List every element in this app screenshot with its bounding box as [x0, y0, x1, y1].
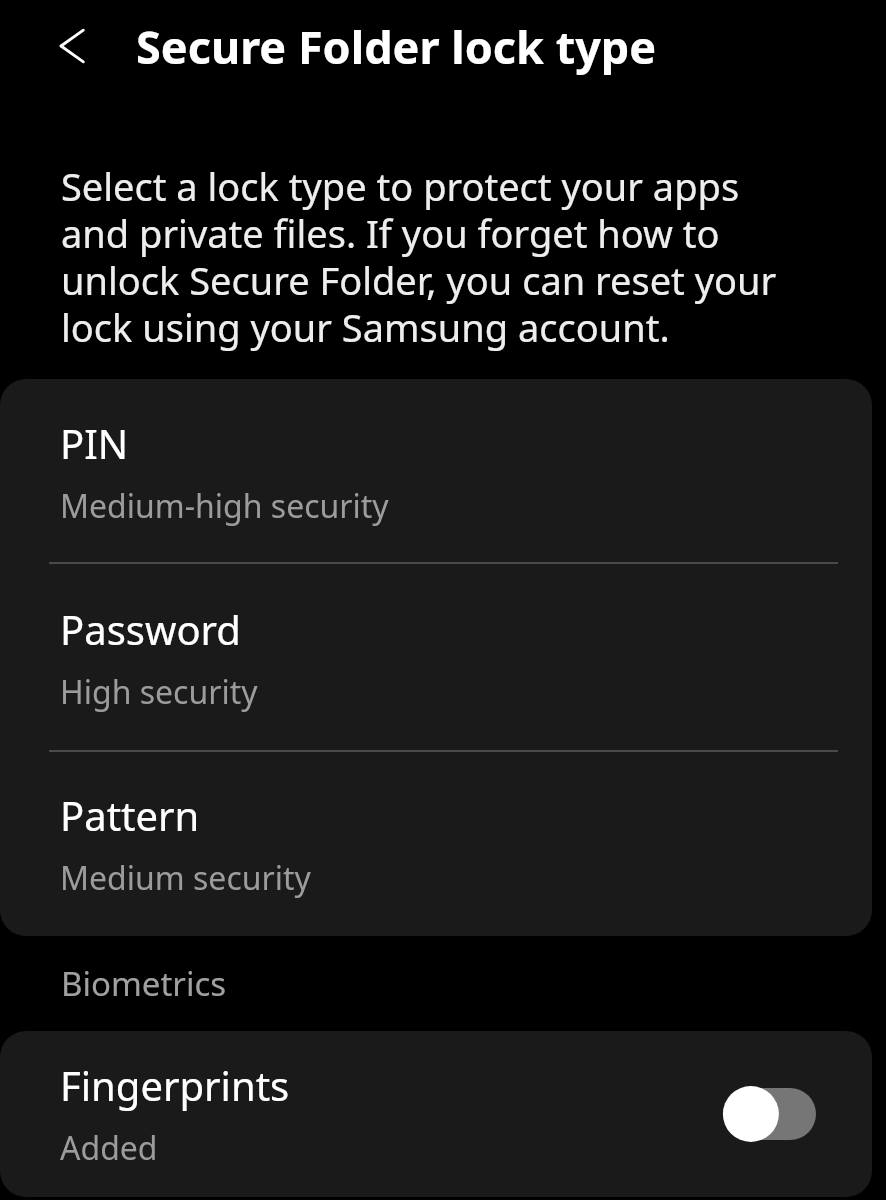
staticText: Added	[60, 1126, 158, 1170]
staticText: PIN	[60, 416, 129, 470]
staticText: Select a lock type to protect your apps …	[61, 160, 816, 353]
staticText: Medium-high security	[60, 484, 389, 528]
button[interactable]: Fingerprints toggle, off	[718, 1083, 822, 1145]
button[interactable]: Pattern	[0, 752, 872, 936]
staticText: Pattern	[60, 788, 200, 842]
staticText: Fingerprints	[60, 1058, 290, 1112]
staticText: High security	[60, 670, 258, 714]
staticText: Password	[60, 602, 241, 656]
staticText: Secure Folder lock type	[136, 16, 657, 77]
staticText: Medium security	[60, 856, 311, 900]
button[interactable]: Navigate up	[30, 8, 106, 84]
button[interactable]: PIN	[0, 379, 872, 564]
staticText: Biometrics	[61, 961, 227, 1006]
button[interactable]: Password	[0, 564, 872, 752]
button[interactable]: Fingerprints	[0, 1031, 872, 1197]
